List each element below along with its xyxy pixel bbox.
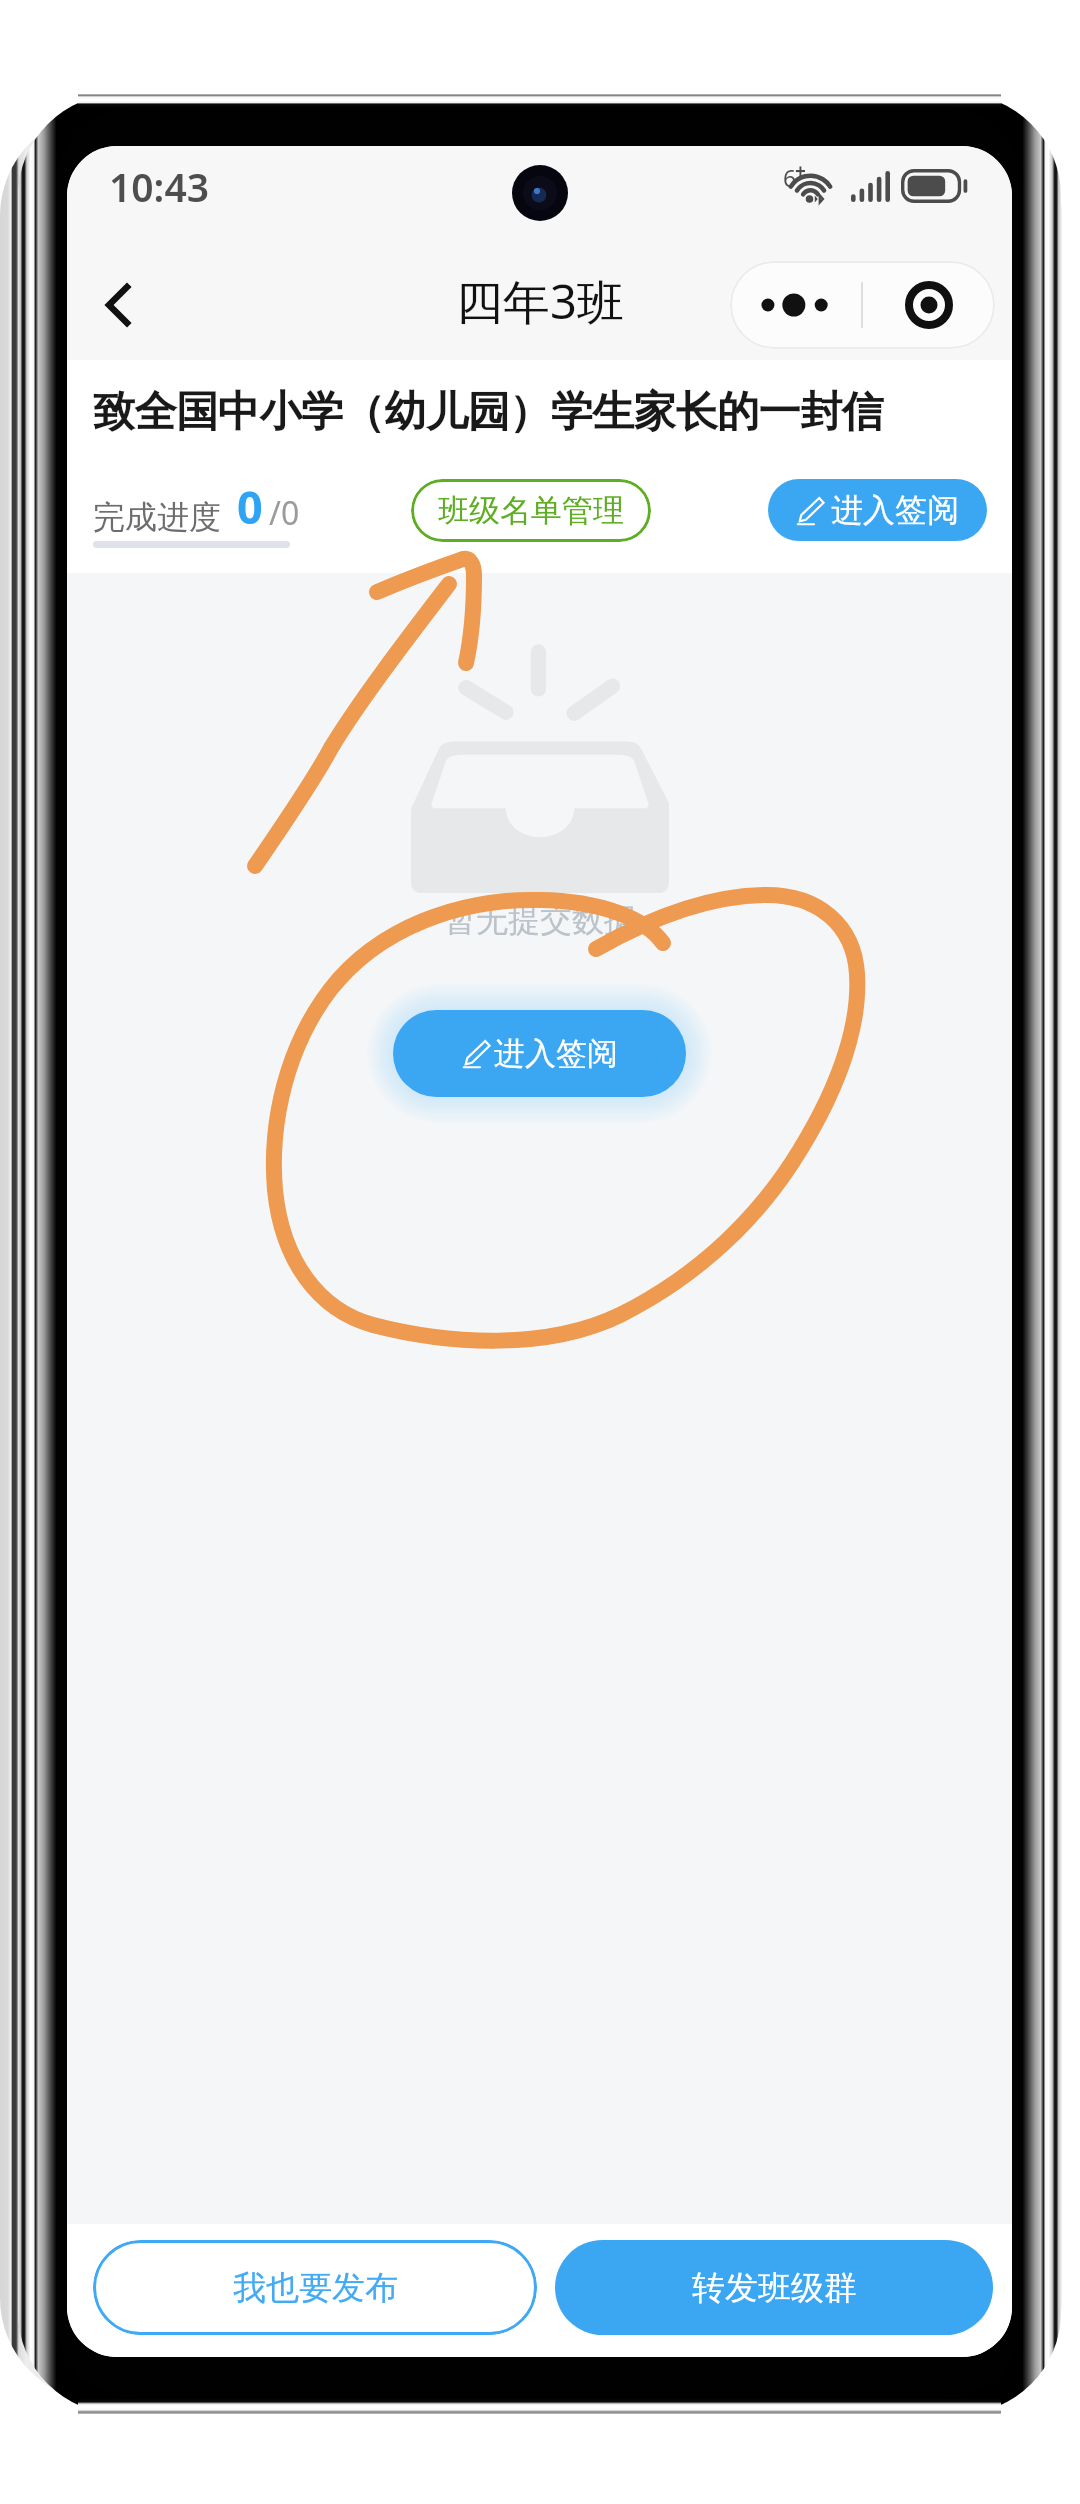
staticText: 0 bbox=[237, 476, 263, 537]
staticText: 我也要发布 bbox=[233, 2267, 398, 2309]
staticText: 10:43 bbox=[109, 160, 209, 213]
staticText: 进入签阅 bbox=[494, 1034, 618, 1073]
staticText: + bbox=[795, 158, 806, 184]
staticText: 暂无提交数据 bbox=[444, 900, 636, 940]
button[interactable]: Back bbox=[73, 260, 163, 350]
button[interactable]: 转发班级群 bbox=[555, 2240, 993, 2335]
button[interactable]: 进入签阅 bbox=[768, 479, 987, 541]
button[interactable]: 班级名单管理 bbox=[411, 479, 651, 542]
staticText: 班级名单管理 bbox=[438, 491, 624, 530]
button[interactable]: Close mini program bbox=[863, 261, 995, 349]
button[interactable]: More options bbox=[730, 261, 861, 349]
staticText: 转发班级群 bbox=[692, 2267, 857, 2309]
staticText: 6 bbox=[783, 162, 797, 193]
button[interactable]: 进入签阅 bbox=[393, 1010, 686, 1097]
staticText: 四年3班 bbox=[456, 269, 624, 333]
staticText: 进入签阅 bbox=[831, 490, 959, 530]
button[interactable]: 我也要发布 bbox=[93, 2240, 537, 2335]
staticText: 完成进度 bbox=[93, 497, 221, 537]
staticText: /0 bbox=[269, 491, 300, 535]
staticText: 致全国中小学（幼儿园）学生家长的一封信 bbox=[93, 386, 884, 439]
